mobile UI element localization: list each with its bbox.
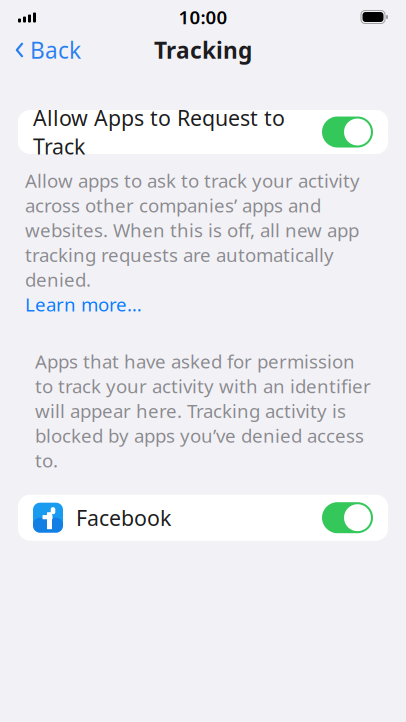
button[interactable]: Learn more… — [25, 292, 142, 317]
staticText: Back — [30, 35, 81, 65]
button[interactable]: Facebook — [18, 495, 388, 541]
staticText: Apps that have asked for permission to t… — [35, 349, 371, 473]
staticText: Tracking — [154, 35, 252, 65]
button[interactable]: Back — [12, 29, 83, 71]
staticText: Allow Apps to Request to Track — [33, 104, 285, 160]
staticText: Learn more… — [25, 292, 142, 317]
staticText: 10:00 — [178, 5, 227, 29]
staticText: Facebook — [76, 503, 171, 532]
staticText: Allow apps to ask to track your activity… — [25, 168, 360, 292]
button[interactable]: Allow Apps to Request to Track — [18, 110, 388, 154]
